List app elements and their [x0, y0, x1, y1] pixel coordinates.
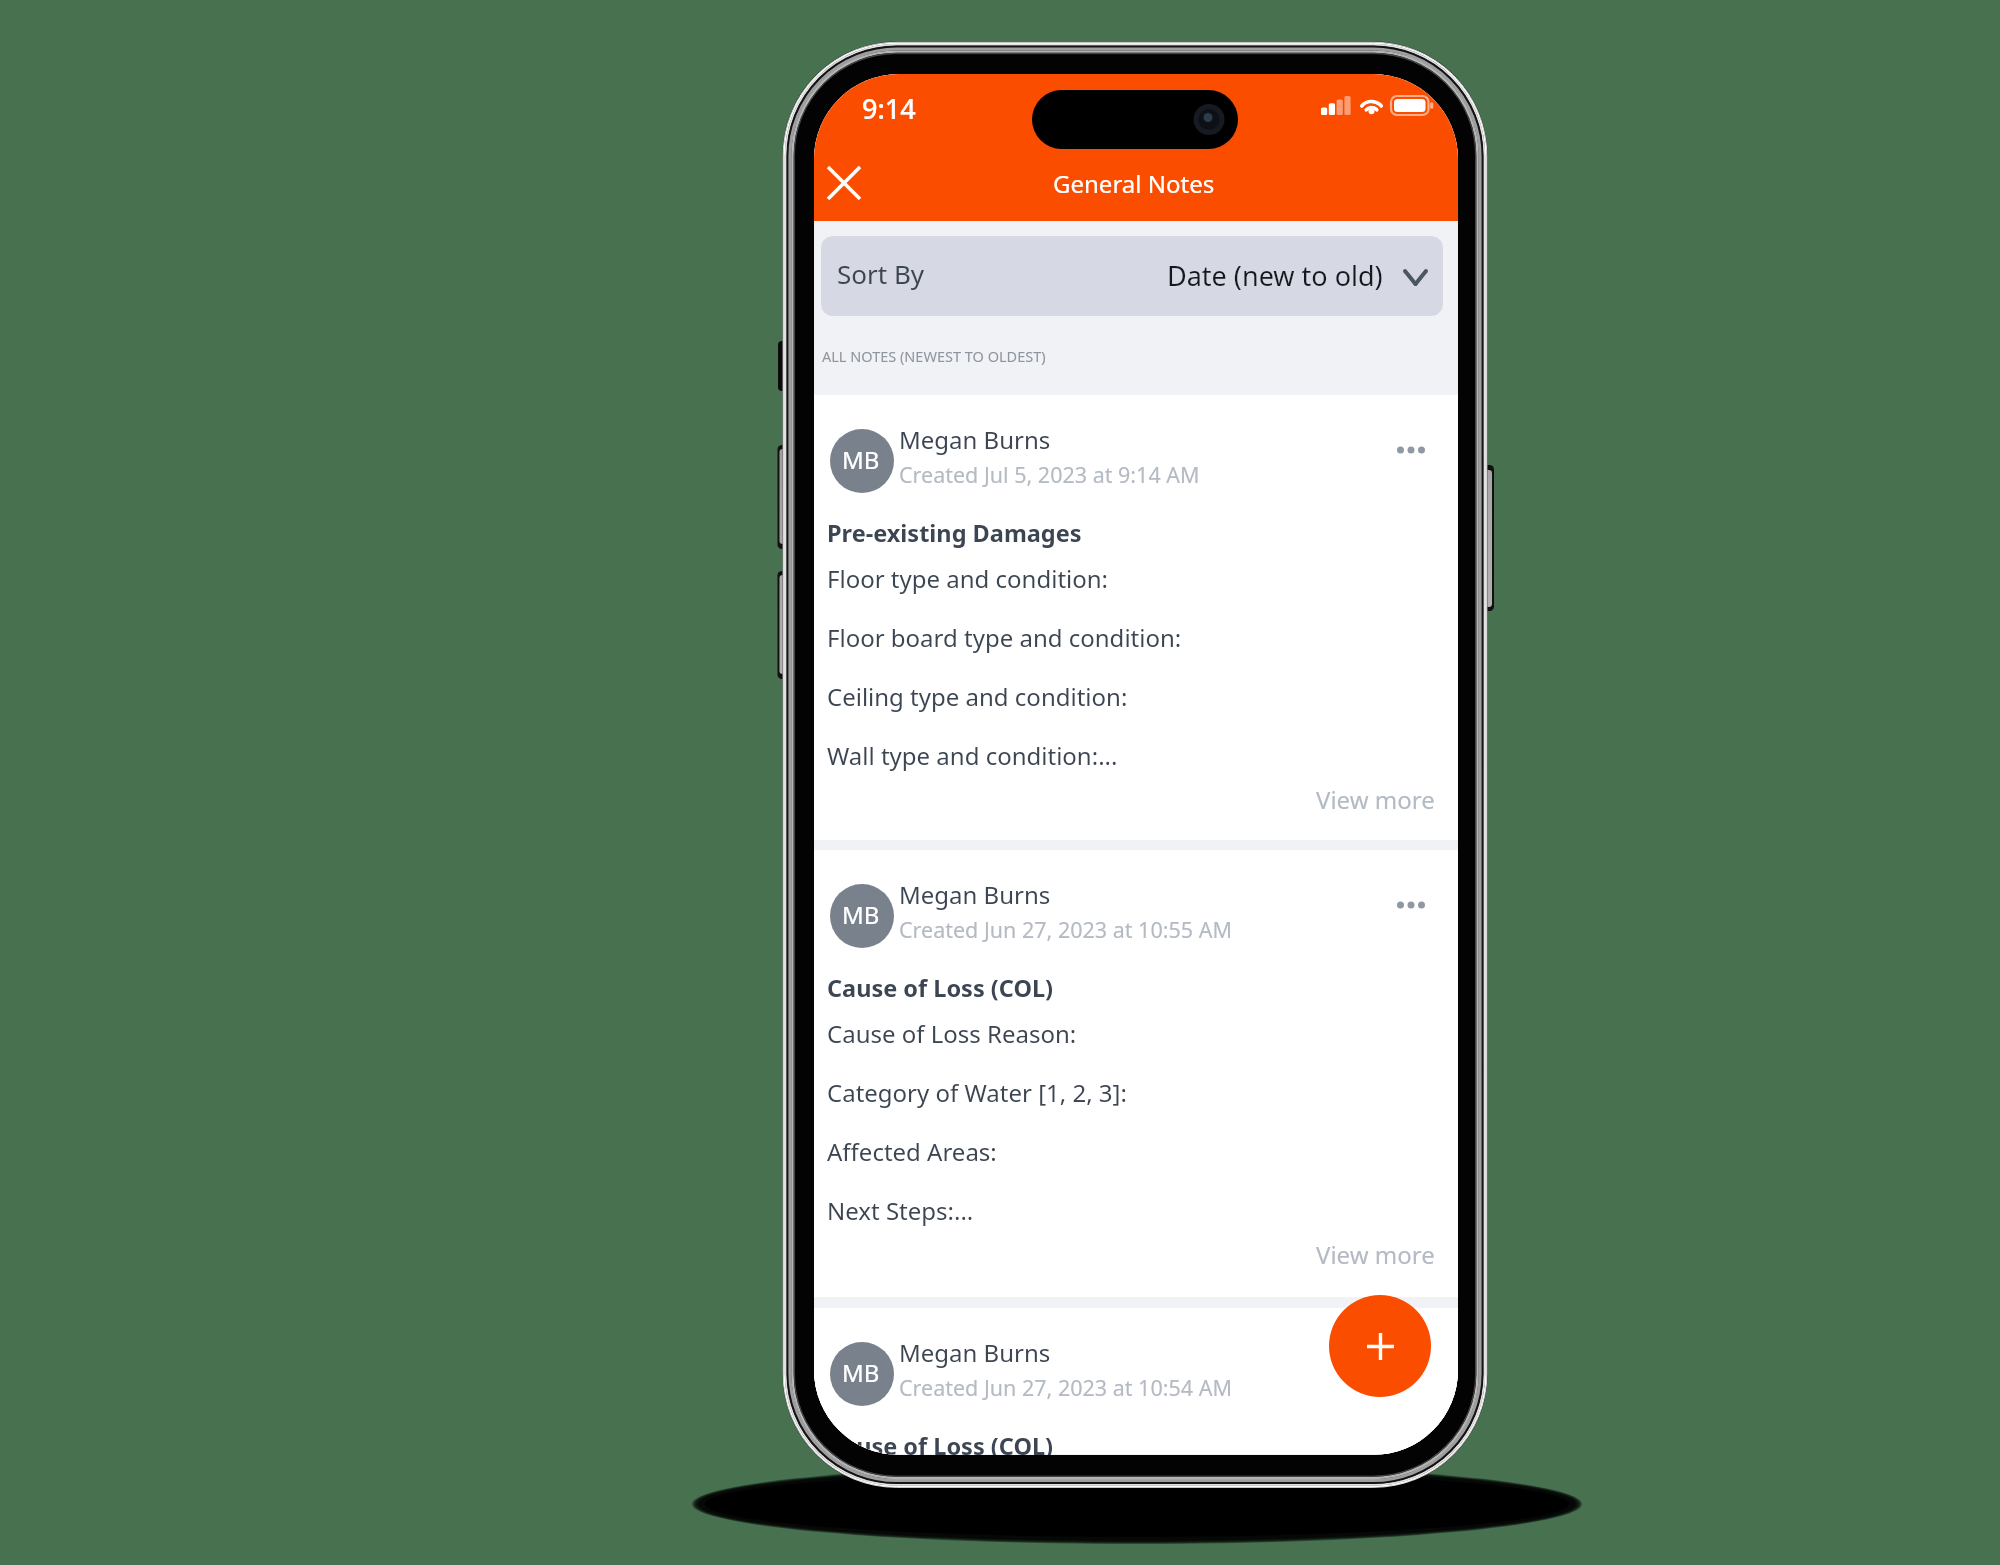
staticText: Created Jun 27, 2023 at 10:54 AM	[899, 1373, 1232, 1402]
staticText: 9:14	[862, 90, 916, 127]
staticText: Created Jun 27, 2023 at 10:55 AM	[899, 915, 1232, 944]
staticText: MB	[842, 898, 880, 931]
staticText: Megan Burns	[899, 423, 1051, 456]
staticText: Created Jul 5, 2023 at 9:14 AM	[899, 460, 1200, 489]
staticText: View more	[1316, 783, 1435, 816]
staticText: ALL NOTES (NEWEST TO OLDEST)	[822, 346, 1046, 366]
staticText: Pre-existing Damages	[827, 517, 1082, 549]
staticText: MB	[842, 443, 880, 476]
staticText: Floor board type and condition:	[827, 621, 1182, 654]
button[interactable]: More options	[1386, 886, 1436, 924]
button[interactable]: MB	[814, 850, 1458, 1297]
staticText: Floor type and condition:	[827, 562, 1109, 595]
staticText: Affected Areas:	[827, 1135, 997, 1168]
button[interactable]: MB	[814, 1308, 1458, 1454]
staticText: Cause of Loss (COL)	[827, 1430, 1054, 1455]
staticText: Ceiling type and condition:	[827, 680, 1128, 713]
staticText: Sort By	[837, 256, 925, 291]
button[interactable]: More options	[1386, 431, 1436, 469]
button[interactable]: Sort By	[821, 236, 1443, 316]
staticText: Next Steps:...	[827, 1194, 974, 1227]
staticText: MB	[842, 1356, 880, 1389]
staticText: Megan Burns	[899, 1336, 1051, 1369]
button[interactable]: Add note	[1329, 1295, 1431, 1397]
staticText: Category of Water [1, 2, 3]:	[827, 1076, 1127, 1109]
staticText: Cause of Loss Reason:	[827, 1017, 1077, 1050]
button[interactable]: Close	[814, 151, 876, 215]
staticText: Date (new to old)	[1167, 257, 1383, 294]
button[interactable]: More options	[1386, 1344, 1436, 1382]
staticText: General Notes	[1053, 167, 1215, 200]
staticText: Wall type and condition:...	[827, 739, 1118, 772]
staticText: Cause of Loss (COL)	[827, 972, 1054, 1004]
button[interactable]: View more	[1314, 1234, 1435, 1274]
button[interactable]: View more	[1314, 779, 1435, 819]
staticText: Megan Burns	[899, 878, 1051, 911]
button[interactable]: MB	[814, 395, 1458, 840]
staticText: View more	[1316, 1238, 1435, 1271]
